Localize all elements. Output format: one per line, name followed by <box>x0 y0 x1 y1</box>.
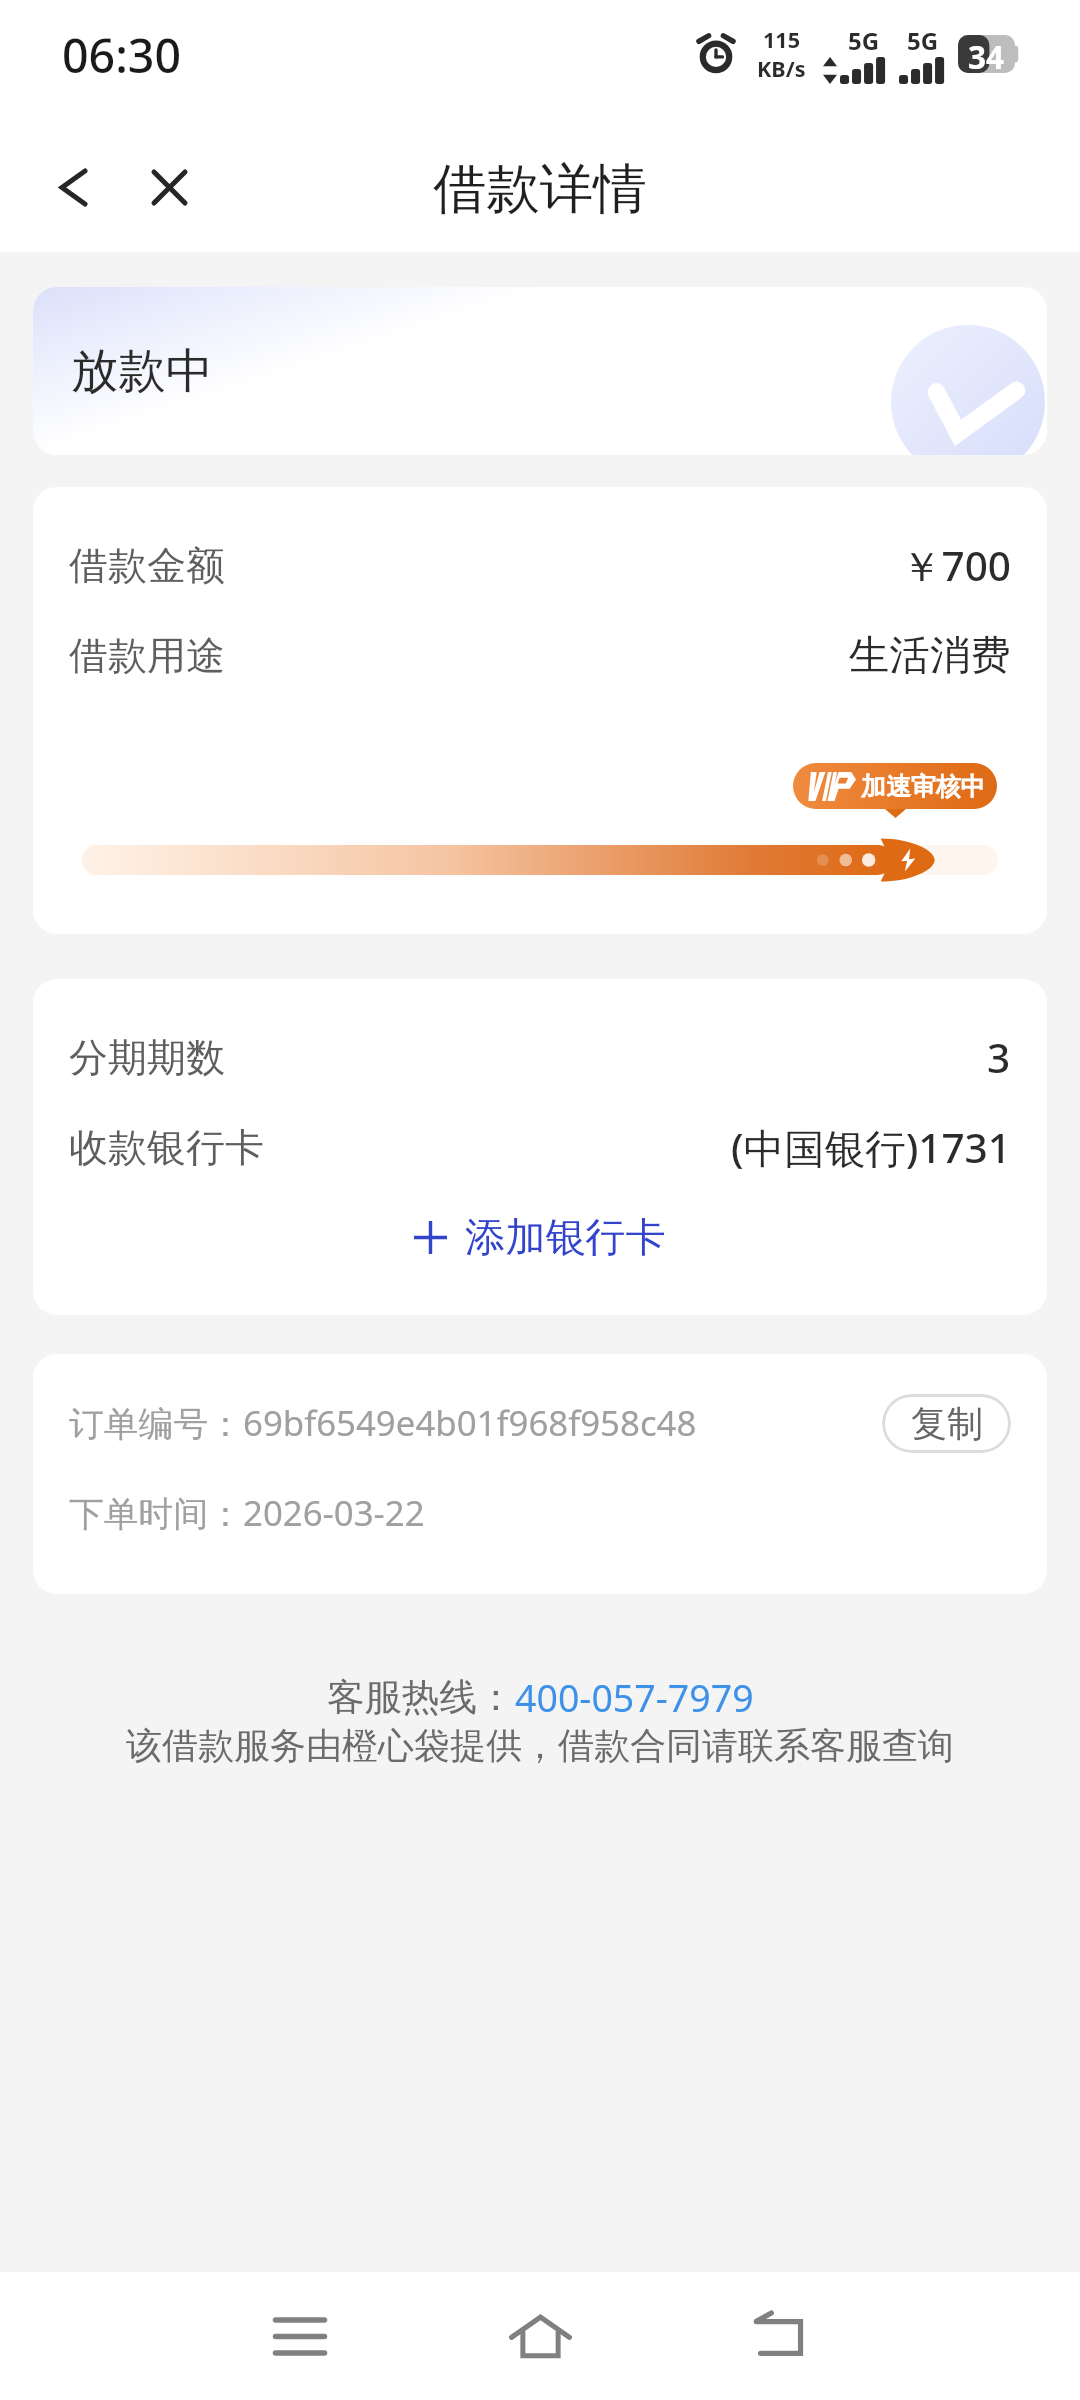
button[interactable]: 添加银行卡 <box>69 1192 1011 1282</box>
button[interactable]: Recents <box>180 2272 420 2400</box>
staticText: 借款金额 <box>69 541 225 590</box>
staticText: 收款银行卡 <box>69 1123 264 1172</box>
staticText: 客服热线： <box>327 1674 515 1721</box>
staticText: (中国银行)1731 <box>731 1120 1011 1175</box>
staticText: 订单编号：69bf6549e4b01f968f958c48 <box>69 1399 697 1447</box>
staticText: 借款用途 <box>69 631 225 680</box>
button[interactable]: 复制 <box>882 1394 1011 1453</box>
button[interactable]: Home <box>420 2272 660 2400</box>
staticText: 3 <box>987 1030 1011 1085</box>
button[interactable]: Back <box>25 127 121 247</box>
staticText: 115 <box>763 25 801 54</box>
staticText: 该借款服务由橙心袋提供，借款合同请联系客服查询 <box>126 1723 954 1768</box>
staticText: KB/s <box>757 54 806 83</box>
staticText: ￥700 <box>901 538 1011 593</box>
staticText: 复制 <box>911 1401 983 1446</box>
button[interactable]: Back <box>660 2272 900 2400</box>
staticText: 生活消费 <box>849 630 1011 681</box>
staticText: 放款中 <box>71 341 214 401</box>
button[interactable]: 400-057-7979 <box>515 1672 754 1723</box>
staticText: 5G <box>907 24 939 57</box>
staticText: 借款详情 <box>433 156 647 223</box>
staticText: 34 <box>968 35 1005 73</box>
staticText: 5G <box>848 24 880 57</box>
staticText: 加速审核中 <box>861 771 986 802</box>
staticText: 添加银行卡 <box>465 1212 666 1263</box>
staticText: 分期期数 <box>69 1033 225 1082</box>
staticText: 下单时间：2026-03-22 <box>69 1489 425 1537</box>
staticText: 06:30 <box>62 23 182 86</box>
button[interactable]: Close <box>121 127 217 247</box>
